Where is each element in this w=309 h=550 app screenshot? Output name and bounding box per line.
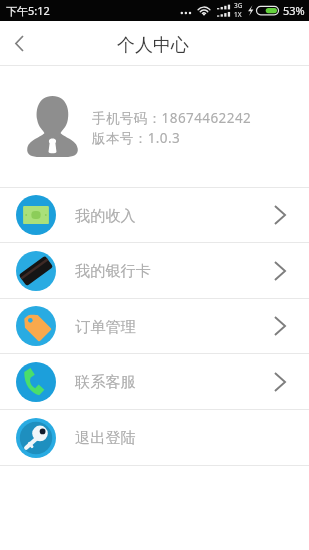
button[interactable]: 联系客服 — [0, 354, 309, 409]
button[interactable]: 我的银行卡 — [0, 243, 309, 298]
staticText: 我的银行卡 — [75, 261, 151, 280]
staticText: 退出登陆 — [75, 428, 136, 447]
staticText: 3G — [234, 1, 243, 10]
staticText: 手机号码：18674462242 版本号：1.0.3 — [92, 109, 252, 147]
button[interactable]: 我的收入 — [0, 188, 309, 242]
staticText: 1X — [234, 10, 242, 19]
staticText: 53% — [283, 3, 305, 18]
staticText: 联系客服 — [75, 372, 136, 391]
staticText: 下午5:12 — [6, 3, 50, 18]
staticText: 我的收入 — [75, 206, 136, 225]
staticText: 订单管理 — [75, 317, 136, 336]
button[interactable]: Back — [0, 21, 42, 65]
staticText: 个人中心 — [117, 34, 189, 57]
button[interactable]: 订单管理 — [0, 299, 309, 353]
button[interactable]: 退出登陆 — [0, 410, 309, 465]
